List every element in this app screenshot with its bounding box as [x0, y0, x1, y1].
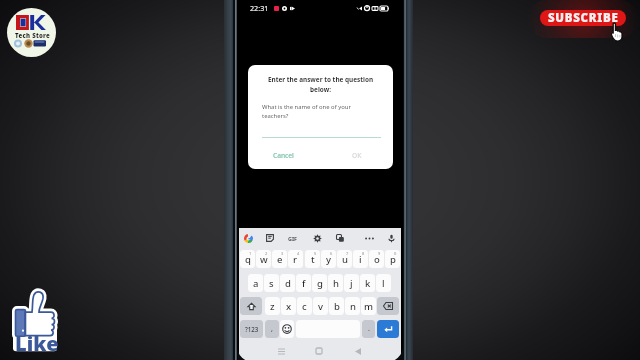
- button[interactable]: Stickers: [263, 231, 277, 245]
- button[interactable]: f: [296, 274, 311, 292]
- staticText: t: [311, 253, 315, 266]
- button[interactable]: Google search: [241, 231, 255, 245]
- staticText: 7: [346, 251, 349, 256]
- staticText: Like: [15, 330, 59, 357]
- button[interactable]: Recent apps: [273, 343, 289, 359]
- button[interactable]: Back: [350, 343, 366, 359]
- button[interactable]: Like: [10, 291, 60, 353]
- staticText: m: [364, 300, 373, 313]
- staticText: ,: [271, 324, 273, 334]
- button[interactable]: a: [248, 274, 263, 292]
- button[interactable]: m: [361, 297, 376, 315]
- button[interactable]: s: [264, 274, 279, 292]
- button[interactable]: Translate: [333, 231, 347, 245]
- button[interactable]: Backspace: [377, 297, 399, 315]
- staticText: g: [317, 277, 323, 290]
- staticText: p: [390, 253, 396, 266]
- staticText: n: [350, 300, 356, 313]
- button[interactable]: o: [369, 250, 384, 268]
- staticText: .: [368, 324, 370, 334]
- staticText: SUBSCRIBE: [548, 10, 619, 26]
- button[interactable]: Emoji: [280, 320, 294, 338]
- staticText: 6: [330, 251, 333, 256]
- staticText: Tech Store: [15, 32, 51, 40]
- staticText: r: [293, 253, 298, 266]
- staticText: q: [245, 253, 251, 266]
- button[interactable]: Settings: [310, 231, 324, 245]
- staticText: e: [277, 253, 283, 266]
- staticText: w: [260, 253, 268, 266]
- button[interactable]: Shift: [240, 297, 262, 315]
- button[interactable]: ,: [265, 320, 279, 338]
- staticText: y: [326, 253, 332, 266]
- staticText: 22:31: [250, 3, 269, 13]
- button[interactable]: Voice input: [384, 231, 398, 245]
- staticText: 3: [281, 251, 284, 256]
- button[interactable]: q: [240, 250, 255, 268]
- button[interactable]: e: [272, 250, 287, 268]
- staticText: 0: [394, 251, 397, 256]
- button[interactable]: d: [280, 274, 295, 292]
- button[interactable]: SUBSCRIBE: [540, 10, 626, 26]
- staticText: f: [302, 277, 306, 290]
- other: Cursor: [609, 23, 623, 41]
- staticText: What is the name of one of your teachers…: [262, 103, 365, 120]
- button[interactable]: Cancel: [270, 148, 297, 163]
- staticText: Enter the answer to the question below:: [258, 75, 383, 93]
- button[interactable]: OK: [349, 148, 365, 163]
- staticText: 8: [362, 251, 365, 256]
- button[interactable]: n: [345, 297, 360, 315]
- staticText: s: [269, 277, 274, 290]
- button[interactable]: Home: [311, 343, 327, 359]
- staticText: b: [334, 300, 340, 313]
- button[interactable]: i: [353, 250, 368, 268]
- button[interactable]: DK Tech Store channel: [7, 8, 56, 57]
- staticText: 9: [378, 251, 381, 256]
- button[interactable]: p: [385, 250, 400, 268]
- staticText: x: [286, 300, 292, 313]
- button[interactable]: u: [337, 250, 352, 268]
- staticText: z: [270, 300, 275, 313]
- button[interactable]: l: [376, 274, 391, 292]
- staticText: 2: [265, 251, 268, 256]
- staticText: 1: [249, 251, 252, 256]
- staticText: a: [253, 277, 259, 290]
- button[interactable]: ?123: [240, 320, 263, 338]
- button[interactable]: z: [265, 297, 280, 315]
- button[interactable]: c: [297, 297, 312, 315]
- button[interactable]: Enter: [377, 320, 399, 338]
- staticText: h: [333, 277, 339, 290]
- button[interactable]: b: [329, 297, 344, 315]
- button[interactable]: GIF: [285, 231, 299, 245]
- button[interactable]: j: [344, 274, 359, 292]
- button[interactable]: v: [313, 297, 328, 315]
- button[interactable]: y: [321, 250, 336, 268]
- staticText: c: [302, 300, 307, 313]
- button[interactable]: x: [281, 297, 296, 315]
- button[interactable]: h: [328, 274, 343, 292]
- staticText: Cancel: [273, 151, 294, 160]
- button[interactable]: w: [256, 250, 271, 268]
- button[interactable]: .: [362, 320, 375, 338]
- staticText: o: [374, 253, 380, 266]
- staticText: ?123: [245, 325, 259, 333]
- staticText: 4: [297, 251, 300, 256]
- staticText: k: [365, 277, 371, 290]
- staticText: i: [359, 253, 362, 266]
- staticText: u: [342, 253, 348, 266]
- staticText: j: [350, 277, 353, 290]
- staticText: v: [318, 300, 324, 313]
- staticText: OK: [352, 151, 362, 160]
- button[interactable]: k: [360, 274, 375, 292]
- button[interactable]: More options: [362, 231, 376, 245]
- staticText: GIF: [288, 235, 297, 242]
- staticText: d: [285, 277, 291, 290]
- staticText: 5: [314, 251, 317, 256]
- button[interactable]: t: [305, 250, 320, 268]
- button[interactable]: r: [288, 250, 303, 268]
- staticText: l: [382, 277, 385, 290]
- button[interactable]: g: [312, 274, 327, 292]
